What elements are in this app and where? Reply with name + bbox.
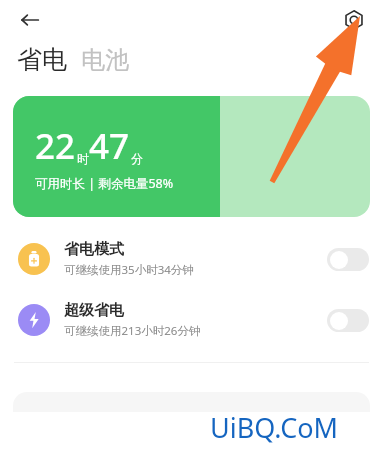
- staticText: 22: [35, 122, 76, 170]
- staticText: 超级省电: [64, 301, 124, 320]
- staticText: 省电: [17, 44, 67, 75]
- staticText: 可继续使用213小时26分钟: [64, 323, 201, 339]
- button[interactable]: Back: [12, 2, 48, 38]
- button[interactable]: 省电模式 toggle: [327, 248, 369, 271]
- staticText: 电池: [81, 45, 129, 75]
- button[interactable]: 超级省电: [0, 301, 383, 339]
- staticText: 可用时长 | 剩余电量58%: [35, 175, 174, 192]
- button[interactable]: 电池: [81, 45, 129, 75]
- button[interactable]: Settings: [337, 3, 371, 37]
- staticText: UiBQ.CoM: [210, 409, 339, 446]
- staticText: 分: [131, 151, 143, 166]
- staticText: 47: [89, 122, 130, 170]
- staticText: 省电模式: [64, 240, 124, 259]
- button[interactable]: 省电: [17, 44, 67, 75]
- button[interactable]: 省电模式: [0, 240, 383, 278]
- staticText: 可继续使用35小时34分钟: [64, 262, 194, 278]
- button[interactable]: 22: [13, 96, 370, 217]
- staticText: 时: [77, 151, 89, 166]
- button[interactable]: 超级省电 toggle: [327, 309, 369, 332]
